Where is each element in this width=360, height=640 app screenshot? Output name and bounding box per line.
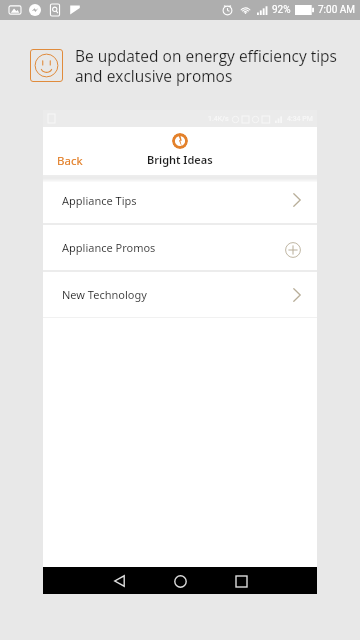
button[interactable]: Back: [43, 151, 91, 171]
button[interactable]: Appliance Promos: [43, 225, 317, 270]
staticText: 1.4K/s: [208, 115, 229, 123]
staticText: 7:00 AM: [318, 4, 356, 16]
staticText: 4:34 PM: [287, 115, 313, 123]
staticText: Be updated on energy efficiency tips and…: [75, 45, 337, 86]
staticText: Back: [57, 153, 83, 169]
button[interactable]: Be updated on energy efficiency tips and…: [0, 20, 360, 110]
button[interactable]: Recent apps: [231, 571, 251, 591]
button[interactable]: New Technology: [43, 272, 317, 317]
staticText: Bright Ideas: [147, 152, 213, 167]
staticText: 92%: [272, 4, 291, 16]
staticText: Appliance Tips: [62, 193, 137, 208]
button[interactable]: Home: [170, 571, 190, 591]
button[interactable]: Appliance Tips: [43, 182, 317, 223]
staticText: Appliance Promos: [62, 240, 156, 255]
button[interactable]: Back: [109, 571, 129, 591]
staticText: New Technology: [62, 287, 147, 302]
